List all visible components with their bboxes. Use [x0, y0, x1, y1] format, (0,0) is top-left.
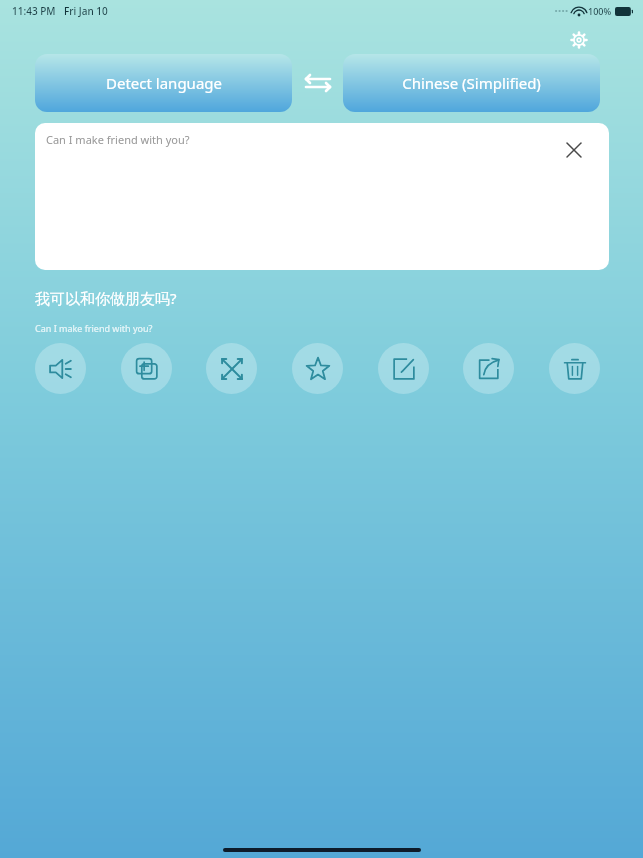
button[interactable]: Speak	[35, 343, 86, 394]
staticText: Chinese (Simplified)	[402, 73, 541, 93]
staticText: Can I make friend with you?	[46, 132, 190, 147]
staticText: Fri Jan 10	[64, 4, 108, 18]
button[interactable]: Can I make friend with you?	[35, 123, 609, 270]
button[interactable]: Delete	[549, 343, 600, 394]
staticText: 100%	[588, 5, 612, 17]
staticText: Detect language	[106, 73, 222, 93]
button[interactable]: Settings	[565, 26, 593, 54]
button[interactable]: Swap languages	[292, 54, 343, 112]
button[interactable]: Copy	[121, 343, 172, 394]
button[interactable]: Clear	[563, 139, 585, 161]
button[interactable]: Favorite	[292, 343, 343, 394]
button[interactable]: Share	[463, 343, 514, 394]
staticText: 我可以和你做朋友吗?	[35, 288, 177, 308]
button[interactable]: Detect language	[35, 54, 292, 112]
button[interactable]: Expand	[206, 343, 257, 394]
staticText: 11:43 PM	[12, 4, 56, 18]
button[interactable]: Edit	[378, 343, 429, 394]
staticText: Can I make friend with you?	[35, 322, 153, 334]
button[interactable]: Chinese (Simplified)	[343, 54, 600, 112]
